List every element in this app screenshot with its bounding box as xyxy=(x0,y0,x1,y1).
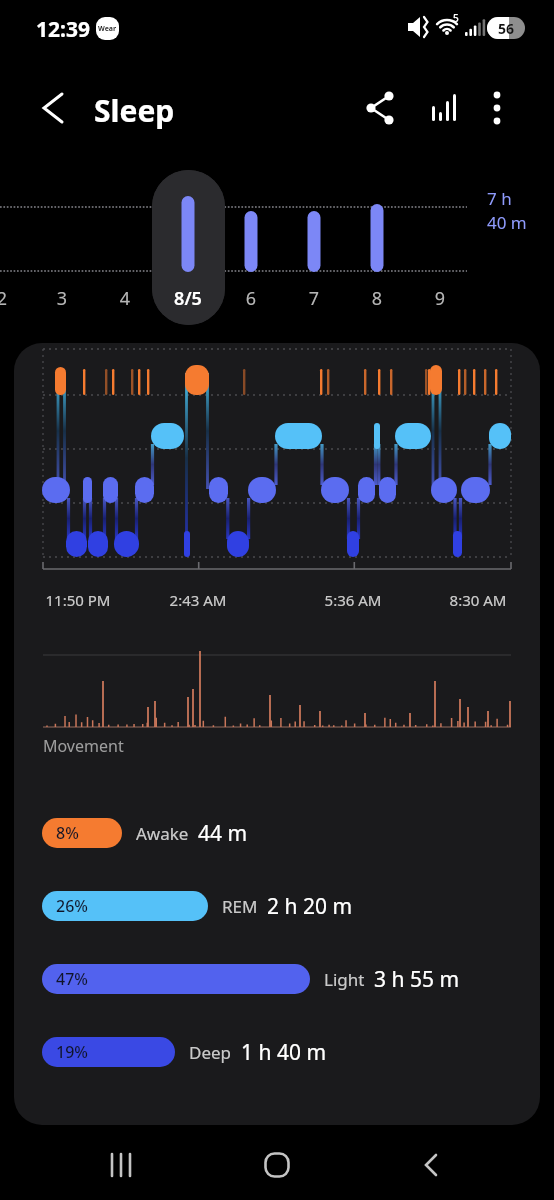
staticText: 4 xyxy=(95,286,155,311)
staticText: Awake xyxy=(136,822,189,845)
button[interactable]: 26% xyxy=(42,891,353,921)
button[interactable] xyxy=(95,165,155,325)
staticText: 26% xyxy=(56,895,88,917)
staticText: 9 xyxy=(410,286,470,311)
button[interactable] xyxy=(87,1130,157,1200)
button[interactable] xyxy=(30,84,78,132)
staticText: Deep xyxy=(189,1041,232,1064)
staticText: 1 h 40 m xyxy=(241,1038,327,1067)
staticText: Light xyxy=(324,968,365,991)
staticText: 2:43 AM xyxy=(148,590,248,610)
staticText: 7 h 40 m xyxy=(487,187,554,234)
button[interactable] xyxy=(284,165,344,325)
button[interactable]: 47% xyxy=(42,964,460,994)
staticText: 19% xyxy=(56,1041,88,1063)
staticText: 44 m xyxy=(198,819,248,848)
button[interactable] xyxy=(242,1130,312,1200)
button[interactable] xyxy=(158,165,218,325)
staticText: 3 h 55 m xyxy=(374,965,460,994)
staticText: 5 xyxy=(453,11,459,25)
button[interactable] xyxy=(347,165,407,325)
button[interactable] xyxy=(358,84,406,132)
staticText: 6 xyxy=(221,286,281,311)
staticText: 8 xyxy=(347,286,407,311)
button[interactable] xyxy=(473,84,521,132)
button[interactable] xyxy=(0,165,32,325)
staticText: 2 h 20 m xyxy=(267,892,353,921)
staticText: 8% xyxy=(56,822,79,844)
staticText: 8:30 AM xyxy=(428,590,528,610)
button[interactable] xyxy=(420,84,468,132)
staticText: 2 xyxy=(0,286,32,311)
staticText: Sleep xyxy=(94,90,175,131)
button[interactable] xyxy=(221,165,281,325)
staticText: Wear xyxy=(98,24,117,34)
button[interactable]: 8% xyxy=(42,818,248,848)
button[interactable] xyxy=(397,1130,467,1200)
staticText: 12:39 xyxy=(36,15,90,44)
staticText: 8/5 xyxy=(158,286,218,311)
staticText: 5:36 AM xyxy=(303,590,403,610)
staticText: 47% xyxy=(56,968,88,990)
staticText: 56 xyxy=(498,19,515,38)
staticText: 7 xyxy=(284,286,344,311)
button[interactable] xyxy=(32,165,92,325)
button[interactable]: 19% xyxy=(42,1037,327,1067)
staticText: 11:50 PM xyxy=(28,590,128,610)
staticText: REM xyxy=(222,895,258,918)
button[interactable] xyxy=(410,165,470,325)
staticText: 3 xyxy=(32,286,92,311)
staticText: Movement xyxy=(43,735,124,757)
